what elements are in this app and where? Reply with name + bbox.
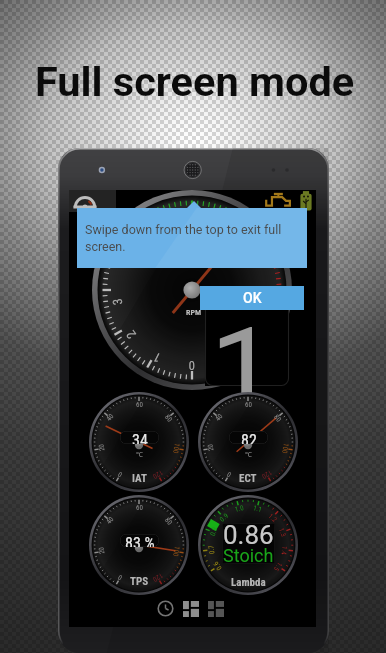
staticText: RPM	[186, 308, 202, 317]
staticText: Full screen mode	[35, 57, 355, 106]
staticText: TPS	[130, 575, 149, 588]
staticText: OK	[243, 290, 262, 306]
button[interactable]: 1	[205, 286, 289, 386]
staticText: Lambda	[231, 576, 266, 589]
staticText: 60	[136, 401, 143, 409]
staticText: 1.1	[252, 504, 263, 514]
staticText: 83 %	[125, 534, 155, 547]
staticText: 20	[97, 546, 106, 555]
staticText: 0.9	[218, 512, 230, 524]
staticText: Stoich	[223, 545, 274, 564]
staticText: 1	[150, 349, 163, 366]
staticText: 1.2	[266, 512, 278, 524]
staticText: 3	[109, 297, 125, 306]
staticText: 82	[241, 431, 257, 444]
staticText: 80	[163, 516, 174, 527]
staticText: 0	[225, 469, 233, 478]
button[interactable]: Swipe down from the top to exit full scr…	[77, 208, 307, 268]
staticText: 120	[151, 468, 164, 480]
staticText: 0.86	[223, 523, 274, 550]
staticText: 1.0	[234, 504, 245, 514]
button[interactable]: 0	[89, 495, 189, 595]
staticText: 0.7	[207, 544, 216, 554]
staticText: 1.5	[272, 560, 284, 572]
staticText: 100	[171, 545, 181, 558]
button[interactable]: OK	[200, 286, 304, 310]
staticText: 2	[123, 327, 139, 342]
staticText: 20	[97, 443, 106, 452]
button[interactable]: USB connected	[299, 190, 313, 212]
button[interactable]: 0.6	[198, 495, 298, 595]
staticText: 120	[151, 571, 164, 583]
staticText: 80	[272, 413, 283, 424]
staticText: 0	[116, 572, 124, 581]
staticText: 0	[116, 469, 124, 478]
staticText: 0.8	[209, 526, 220, 537]
staticText: 40	[105, 515, 116, 526]
staticText: IAT	[132, 472, 147, 485]
staticText: 34	[132, 431, 148, 444]
button[interactable]: Check engine light	[263, 192, 295, 209]
button[interactable]: More gauges	[208, 601, 224, 617]
staticText: 0	[188, 358, 195, 373]
button[interactable]: Dashboard	[72, 191, 98, 211]
staticText: ECT	[239, 472, 257, 485]
staticText: 120	[260, 468, 273, 480]
staticText: 100	[280, 442, 290, 455]
staticText: Swipe down from the top to exit full scr…	[85, 222, 295, 254]
button[interactable]: History	[157, 600, 174, 617]
staticText: 80	[163, 413, 174, 424]
staticText: 40	[214, 412, 225, 423]
staticText: 1.3	[277, 527, 288, 538]
button[interactable]: Dashboard grid	[183, 601, 199, 617]
staticText: 20	[206, 443, 215, 452]
staticText: 100	[171, 442, 181, 455]
button[interactable]: 0	[198, 392, 298, 492]
staticText: 1	[210, 303, 277, 403]
staticText: ℃	[245, 450, 252, 460]
staticText: 60	[245, 401, 252, 409]
staticText: 40	[105, 412, 116, 423]
button[interactable]: 0	[89, 392, 189, 492]
staticText: 1.4	[279, 545, 288, 555]
staticText: 0.6	[212, 560, 224, 572]
staticText: ℃	[136, 450, 143, 460]
staticText: 60	[136, 504, 143, 512]
